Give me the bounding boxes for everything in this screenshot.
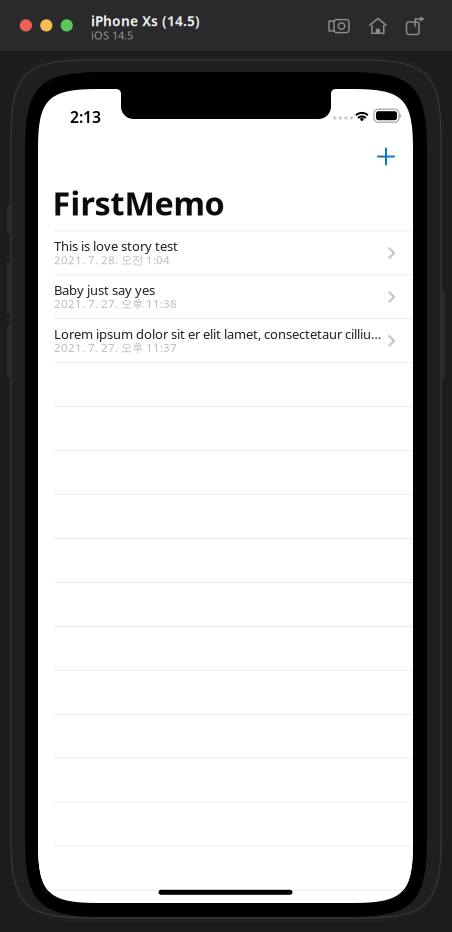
staticText: 2021. 7. 27. 오후 11:37 bbox=[54, 340, 177, 355]
button[interactable]: New memo bbox=[364, 134, 408, 178]
staticText: Baby just say yes bbox=[54, 281, 155, 299]
button[interactable]: Lorem ipsum dolor sit er elit lamet, con… bbox=[38, 319, 413, 362]
button[interactable]: This is love story test bbox=[38, 231, 413, 274]
button[interactable]: Rotate bbox=[399, 12, 431, 40]
staticText: iOS 14.5 bbox=[91, 28, 133, 42]
staticText: 2021. 7. 28. 오전 1:04 bbox=[54, 252, 170, 267]
staticText: iPhone Xs (14.5) bbox=[91, 12, 200, 30]
staticText: Lorem ipsum dolor sit er elit lamet, con… bbox=[54, 325, 381, 342]
button[interactable]: Home bbox=[362, 12, 394, 40]
button[interactable]: Baby just say yes bbox=[38, 275, 413, 318]
staticText: 2021. 7. 27. 오후 11:38 bbox=[54, 296, 177, 311]
staticText: This is love story test bbox=[54, 237, 178, 255]
button[interactable]: Screenshot bbox=[323, 12, 355, 40]
staticText: 2:13 bbox=[70, 106, 101, 127]
staticText: FirstMemo bbox=[52, 181, 224, 224]
